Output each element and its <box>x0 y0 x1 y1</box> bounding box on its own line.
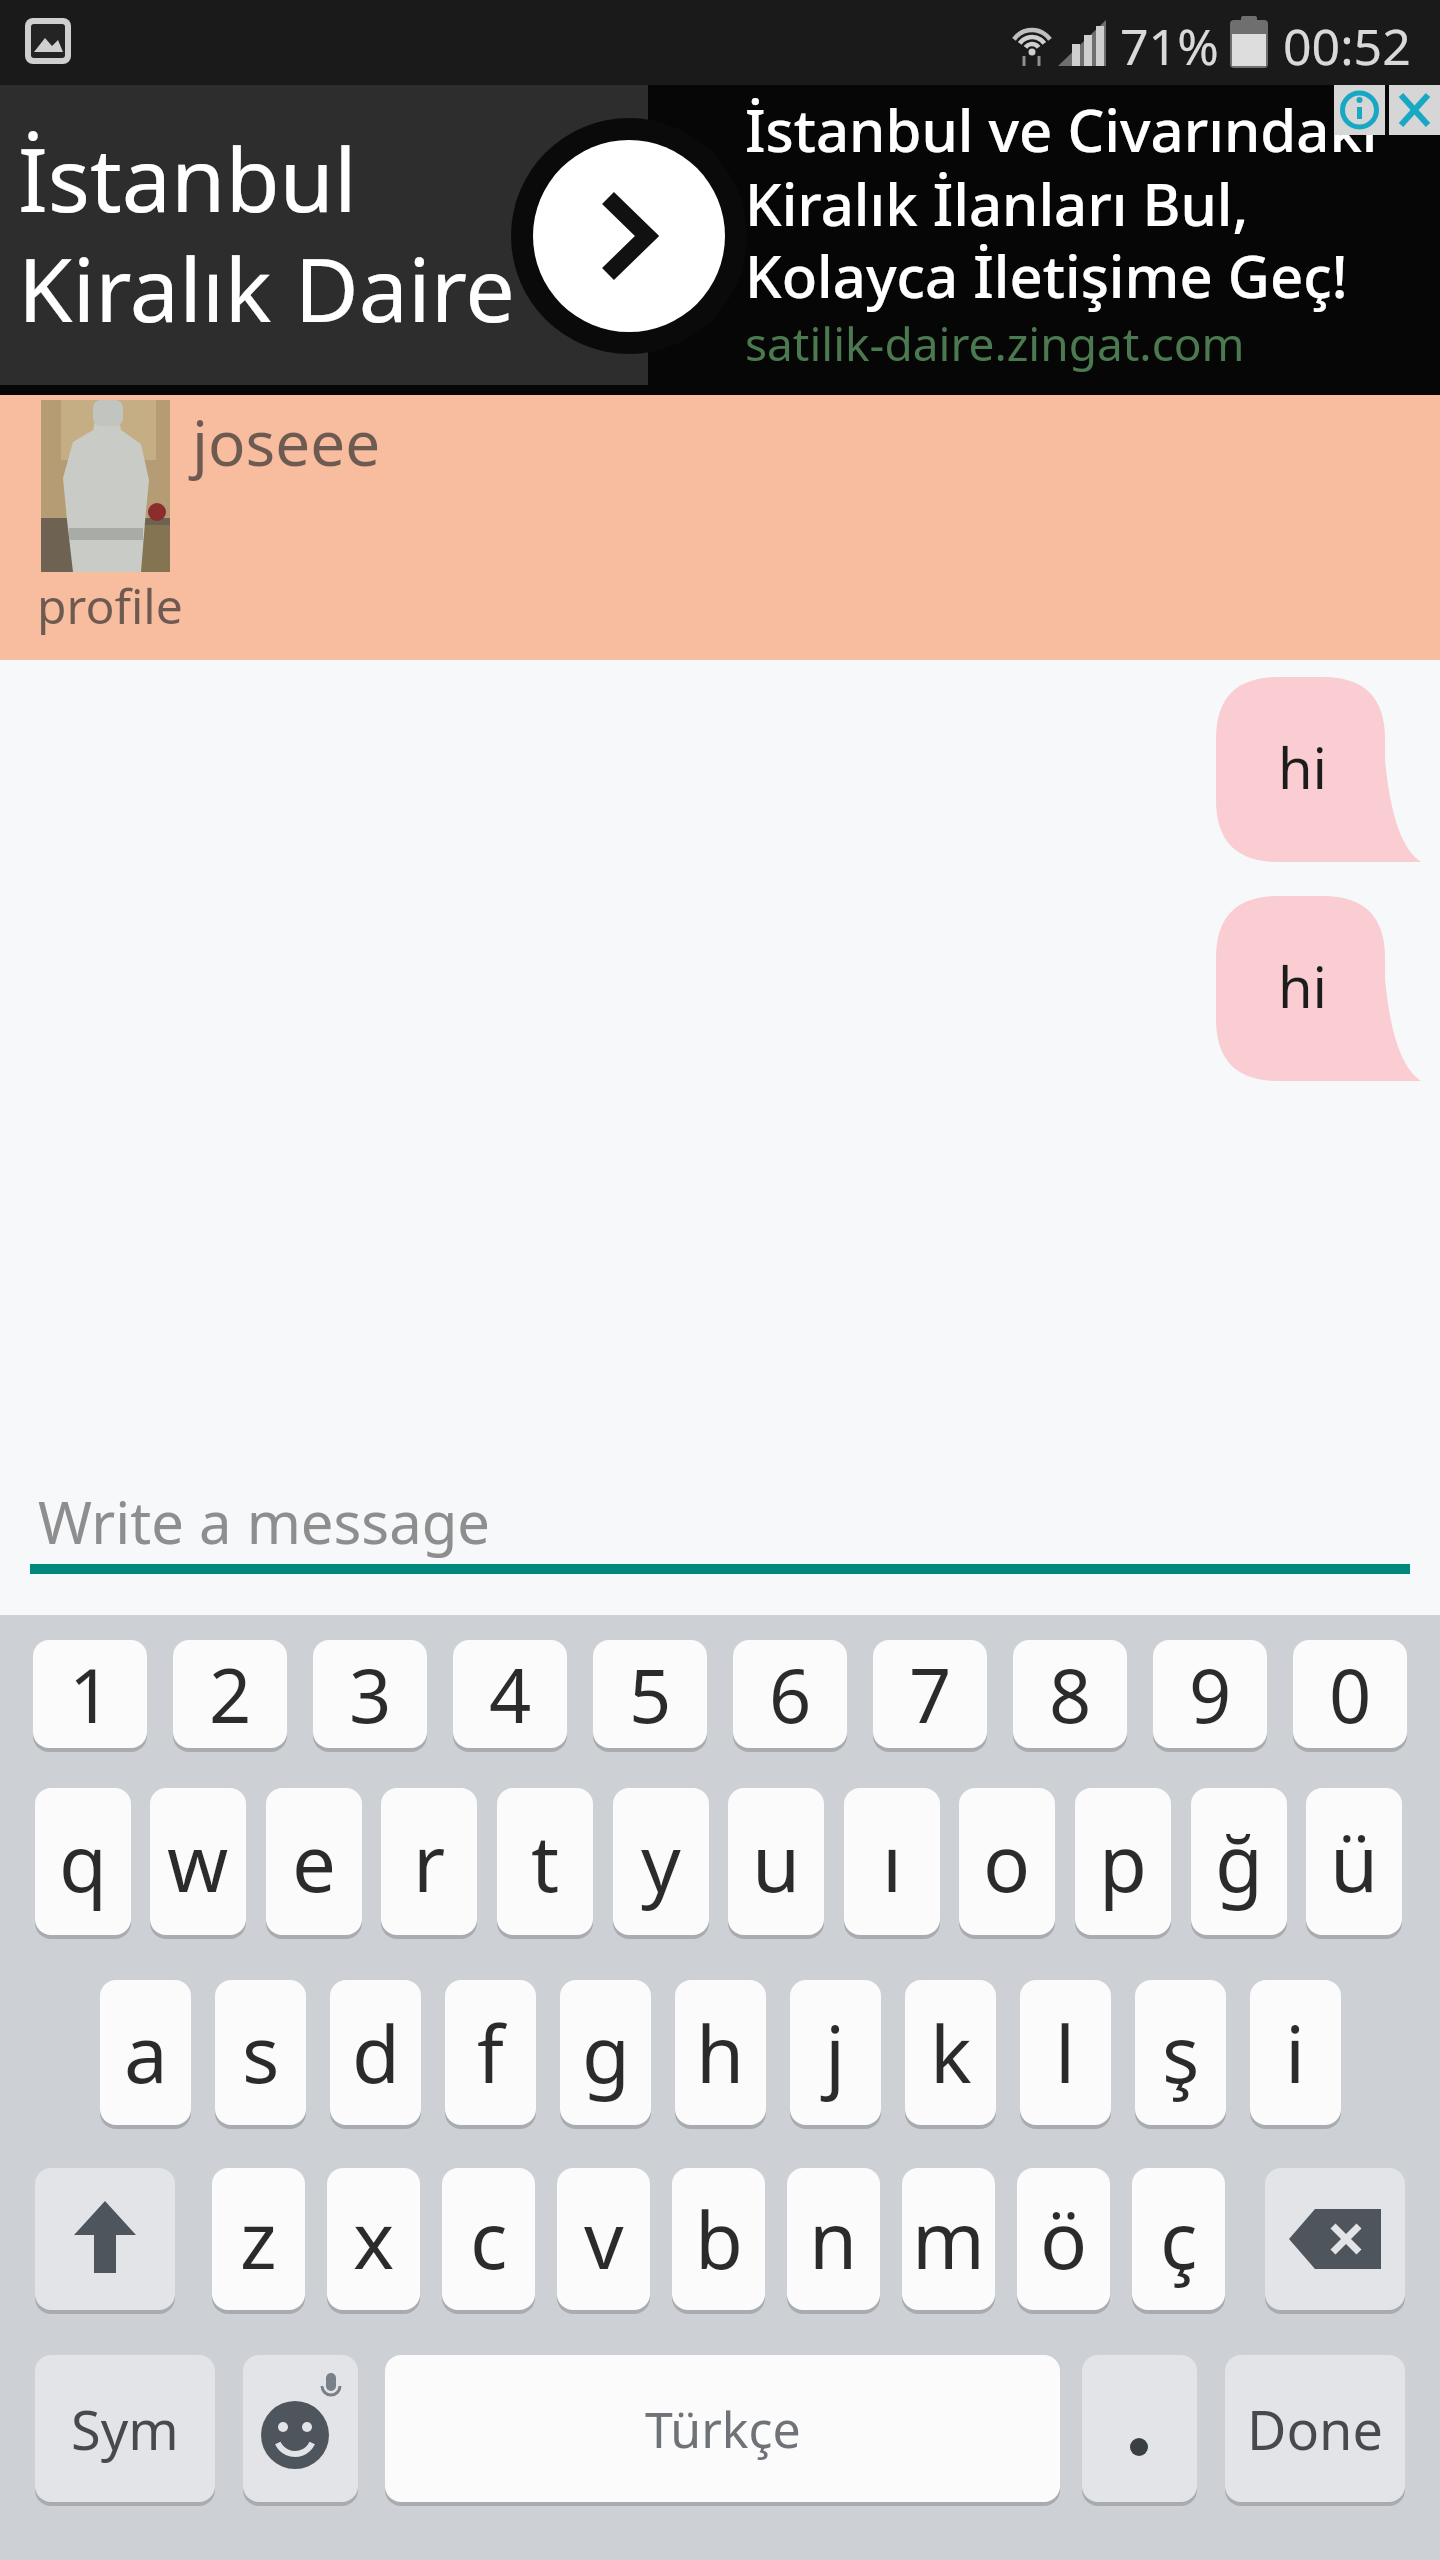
button[interactable]: Write a message <box>0 1460 1440 1615</box>
button[interactable]: 2 <box>173 1640 287 1748</box>
button[interactable]: r <box>381 1788 477 1935</box>
staticText: v <box>584 2186 624 2292</box>
button[interactable]: e <box>266 1788 362 1935</box>
staticText: 9 <box>1189 1644 1232 1745</box>
button[interactable]: v <box>557 2168 650 2310</box>
button[interactable]: 6 <box>733 1640 847 1748</box>
button[interactable]: w <box>150 1788 246 1935</box>
button[interactable] <box>243 2355 358 2502</box>
staticText: j <box>825 2000 846 2106</box>
staticText: profile <box>37 573 183 638</box>
staticText: r <box>413 1809 446 1915</box>
staticText: s <box>242 2000 280 2106</box>
button[interactable]: j <box>790 1980 881 2125</box>
staticText: İstanbul ve Civarındaki <box>745 90 1378 169</box>
button[interactable]: 7 <box>873 1640 987 1748</box>
staticText: o <box>983 1809 1031 1915</box>
button[interactable]: Done <box>1225 2355 1405 2502</box>
staticText: 71% <box>1120 12 1219 80</box>
staticText: ç <box>1160 2186 1198 2292</box>
button[interactable]: h <box>675 1980 766 2125</box>
button[interactable]: b <box>672 2168 765 2310</box>
button[interactable]: i <box>1250 1980 1341 2125</box>
staticText: 8 <box>1049 1644 1092 1745</box>
staticText: 3 <box>349 1644 392 1745</box>
button[interactable]: k <box>905 1980 996 2125</box>
button[interactable]: 9 <box>1153 1640 1267 1748</box>
staticText: 00:52 <box>1283 12 1411 80</box>
staticText: a <box>124 2000 168 2106</box>
button[interactable]: ç <box>1132 2168 1225 2310</box>
staticText: ğ <box>1215 1809 1263 1915</box>
staticText: ö <box>1040 2186 1088 2292</box>
staticText: c <box>470 2186 508 2292</box>
staticText: ş <box>1162 2000 1200 2106</box>
button[interactable] <box>1082 2355 1197 2502</box>
staticText: l <box>1055 2000 1076 2106</box>
button[interactable]: p <box>1075 1788 1171 1935</box>
staticText: p <box>1099 1809 1147 1915</box>
button[interactable]: g <box>560 1980 651 2125</box>
staticText: h <box>696 2000 745 2106</box>
button[interactable] <box>1389 85 1440 135</box>
staticText: i <box>1285 2000 1306 2106</box>
button[interactable]: q <box>35 1788 131 1935</box>
button[interactable]: t <box>497 1788 593 1935</box>
staticText: 6 <box>769 1644 812 1745</box>
button[interactable]: o <box>959 1788 1055 1935</box>
button[interactable]: x <box>327 2168 420 2310</box>
staticText: t <box>531 1809 560 1915</box>
button[interactable]: c <box>442 2168 535 2310</box>
button[interactable]: 4 <box>453 1640 567 1748</box>
button[interactable]: 3 <box>313 1640 427 1748</box>
staticText: y <box>641 1809 681 1915</box>
button[interactable] <box>1334 85 1385 135</box>
staticText: g <box>582 2000 630 2106</box>
button[interactable]: u <box>728 1788 824 1935</box>
button[interactable] <box>1265 2168 1405 2310</box>
button[interactable]: ğ <box>1191 1788 1287 1935</box>
button[interactable]: a <box>100 1980 191 2125</box>
staticText: Kiralık Daire <box>18 228 515 348</box>
staticText: Write a message <box>38 1482 491 1561</box>
staticText: 5 <box>629 1644 672 1745</box>
button[interactable]: 0 <box>1293 1640 1407 1748</box>
button[interactable]: z <box>212 2168 305 2310</box>
button[interactable] <box>41 400 170 572</box>
button[interactable]: d <box>330 1980 421 2125</box>
button[interactable]: ş <box>1135 1980 1226 2125</box>
button[interactable]: ö <box>1017 2168 1110 2310</box>
staticText: b <box>695 2186 743 2292</box>
staticText: 7 <box>909 1644 952 1745</box>
button[interactable]: s <box>215 1980 306 2125</box>
button[interactable] <box>35 2168 175 2310</box>
staticText: w <box>167 1809 229 1915</box>
staticText: 2 <box>209 1644 252 1745</box>
staticText: Kolayca İletişime Geç! <box>745 236 1348 315</box>
button[interactable]: n <box>787 2168 880 2310</box>
staticText: q <box>59 1809 107 1915</box>
staticText: hi <box>1278 948 1328 1024</box>
staticText: d <box>352 2000 400 2106</box>
staticText: u <box>752 1809 801 1915</box>
button[interactable]: 8 <box>1013 1640 1127 1748</box>
button[interactable]: ü <box>1306 1788 1402 1935</box>
staticText: 1 <box>69 1644 112 1745</box>
button[interactable]: Türkçe <box>385 2355 1060 2502</box>
button[interactable]: Sym <box>35 2355 215 2502</box>
staticText: z <box>240 2186 277 2292</box>
staticText: k <box>930 2000 972 2106</box>
button[interactable]: İstanbul <box>0 85 1440 395</box>
staticText: x <box>353 2186 395 2292</box>
button[interactable]: 1 <box>33 1640 147 1748</box>
staticText: ü <box>1330 1809 1379 1915</box>
button[interactable]: m <box>902 2168 995 2310</box>
staticText: e <box>292 1809 336 1915</box>
button[interactable]: 5 <box>593 1640 707 1748</box>
button[interactable]: ı <box>844 1788 940 1935</box>
staticText: f <box>477 2000 504 2106</box>
button[interactable]: y <box>613 1788 709 1935</box>
button[interactable]: f <box>445 1980 536 2125</box>
button[interactable]: l <box>1020 1980 1111 2125</box>
staticText: Done <box>1247 2392 1383 2466</box>
